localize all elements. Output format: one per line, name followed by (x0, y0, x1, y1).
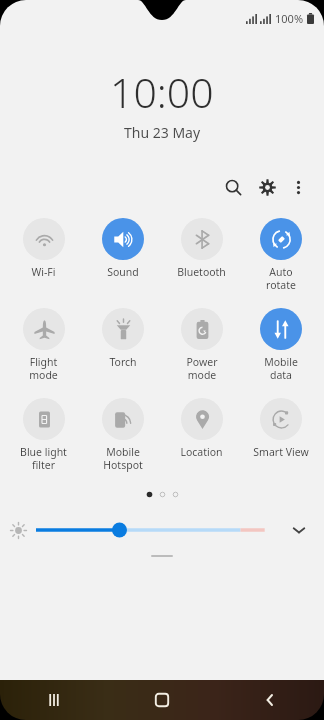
button[interactable]: Mobile data (241, 308, 320, 382)
button[interactable]: Back (216, 680, 324, 720)
button[interactable]: Blue light filter (4, 398, 83, 472)
staticText: Bluetooth (177, 265, 226, 279)
button[interactable]: Location (162, 398, 241, 459)
staticText: Smart View (253, 445, 309, 459)
button[interactable]: Settings (250, 170, 284, 204)
button[interactable]: More options (284, 173, 312, 201)
staticText: Mobile Hotspot (103, 445, 143, 472)
staticText: Auto rotate (266, 265, 296, 292)
button[interactable]: Mobile Hotspot (83, 398, 162, 472)
staticText: 10:00 (110, 64, 214, 120)
button[interactable]: Recents (0, 680, 108, 720)
button[interactable]: Sound (83, 218, 162, 279)
button[interactable]: Search (216, 170, 250, 204)
staticText: Wi-Fi (31, 265, 56, 279)
staticText: Sound (107, 265, 139, 279)
button[interactable]: Smart View (241, 398, 320, 459)
staticText: Location (180, 445, 223, 459)
button[interactable]: Expand brightness settings (284, 515, 314, 545)
button[interactable]: Wi-Fi (4, 218, 83, 279)
button[interactable]: Torch (83, 308, 162, 369)
button[interactable]: Flight mode (4, 308, 83, 382)
button[interactable]: Auto rotate (241, 218, 320, 292)
staticText: Torch (109, 355, 137, 369)
staticText: Thu 23 May (124, 123, 201, 142)
button[interactable]: Home (108, 680, 216, 720)
staticText: 100% (275, 11, 304, 26)
staticText: Power mode (186, 355, 218, 382)
staticText: Blue light filter (20, 445, 67, 472)
staticText: Mobile data (264, 355, 298, 382)
button[interactable]: Brightness (36, 515, 278, 545)
button[interactable]: Power mode (162, 308, 241, 382)
button[interactable]: Bluetooth (162, 218, 241, 279)
staticText: Flight mode (29, 355, 58, 382)
